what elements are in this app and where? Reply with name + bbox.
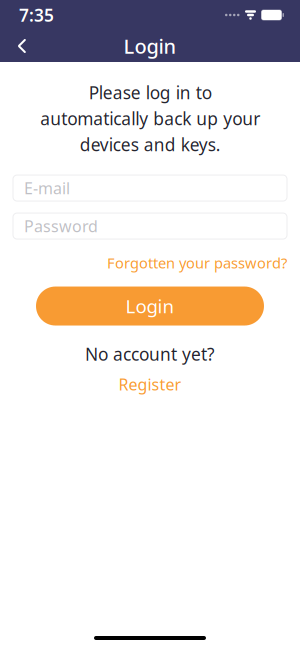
staticText: No account yet?: [85, 342, 215, 365]
button[interactable]: Register: [110, 369, 189, 399]
staticText: Password: [24, 215, 98, 237]
staticText: Login: [125, 294, 174, 318]
button[interactable]: Forgotten your password?: [107, 248, 287, 278]
button[interactable]: Back: [0, 30, 44, 62]
staticText: Login: [123, 33, 176, 59]
staticText: Register: [118, 373, 181, 395]
staticText: Forgotten your password?: [107, 253, 287, 273]
staticText: 7:35: [19, 3, 54, 26]
staticText: E-mail: [24, 177, 70, 199]
staticText: Please log in to automatically back up y…: [40, 81, 260, 156]
button[interactable]: Login: [36, 286, 264, 325]
